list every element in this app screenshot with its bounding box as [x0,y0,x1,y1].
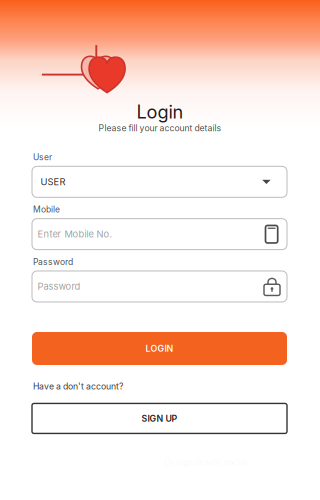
staticText: USER [41,176,66,187]
staticText: Mobile [33,204,60,215]
button[interactable]: Password [32,271,287,302]
staticText: Password [37,281,80,292]
button[interactable]: SIGN UP [32,403,287,433]
button[interactable]: Enter Mobile No. [32,219,287,250]
staticText: LOGIN [145,343,173,354]
staticText: Enter Mobile No. [37,228,112,240]
button[interactable]: USER [32,166,287,197]
staticText: Have a don't account? [33,381,123,391]
button[interactable]: LOGIN [32,332,287,365]
staticText: Please fill your account details [98,123,221,133]
staticText: User [33,152,52,162]
staticText: Password [33,257,73,267]
staticText: Login [136,101,183,123]
staticText: SIGN UP [141,413,177,424]
